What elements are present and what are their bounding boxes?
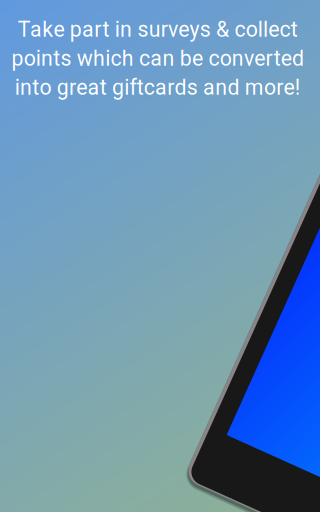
staticText: Take part in surveys & collect points wh… (11, 17, 304, 100)
